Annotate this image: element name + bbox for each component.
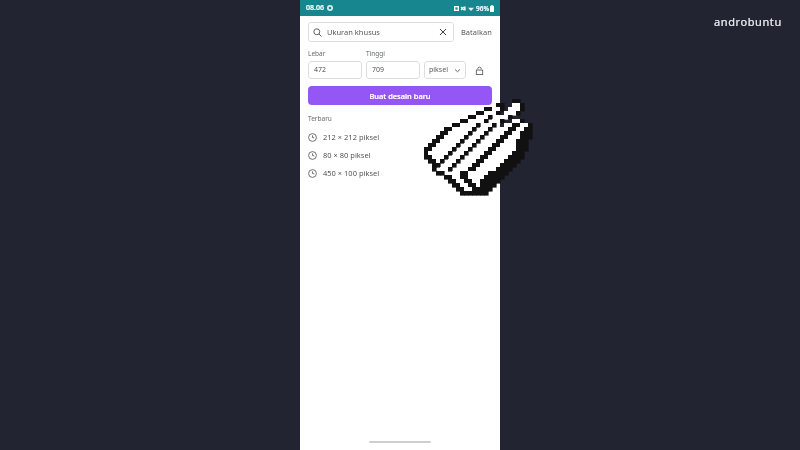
staticText: 212 × 212 piksel	[323, 132, 380, 142]
button[interactable]: Batalkan	[459, 23, 494, 41]
staticText: androbuntu	[714, 14, 782, 29]
staticText: 08.06	[306, 3, 324, 13]
button[interactable]: 450 × 100 piksel	[300, 164, 500, 182]
button[interactable]: Ukuran khusus	[308, 22, 454, 42]
staticText: Batalkan	[461, 27, 492, 37]
staticText: 80 × 80 piksel	[323, 150, 371, 160]
staticText: 96%	[476, 4, 489, 13]
button[interactable]: 212 × 212 piksel	[300, 128, 500, 146]
button[interactable]: piksel	[424, 61, 466, 79]
button[interactable]: Clear	[437, 26, 449, 38]
staticText: Lebar	[308, 49, 326, 58]
staticText: piksel	[429, 65, 448, 75]
button[interactable]: 80 × 80 piksel	[300, 146, 500, 164]
staticText: Buat desain baru	[369, 91, 431, 101]
staticText: Tinggi	[366, 49, 385, 58]
staticText: Ukuran khusus	[327, 27, 380, 37]
staticText: 709	[372, 65, 385, 75]
button[interactable]: Buat desain baru	[308, 86, 492, 105]
button[interactable]: 709	[366, 61, 420, 79]
staticText: Terbaru	[308, 114, 332, 123]
staticText: 450 × 100 piksel	[323, 168, 380, 178]
staticText: 472	[314, 65, 327, 75]
button[interactable]: 472	[308, 61, 362, 79]
button[interactable]: Lock aspect ratio	[472, 63, 486, 77]
